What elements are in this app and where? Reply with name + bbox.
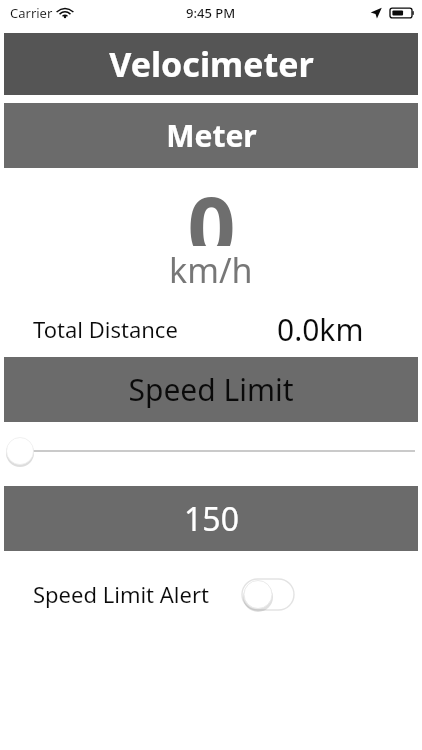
- button[interactable]: Meter: [4, 103, 418, 168]
- staticText: Velocimeter: [109, 41, 314, 87]
- staticText: Carrier: [10, 4, 53, 22]
- button[interactable]: 150: [4, 486, 418, 551]
- staticText: Speed Limit: [128, 369, 294, 410]
- staticText: Meter: [166, 115, 257, 156]
- button[interactable]: Velocimeter: [4, 33, 418, 95]
- button[interactable]: Speed limit slider: [0, 422, 422, 480]
- staticText: Total Distance: [33, 314, 178, 344]
- button[interactable]: Speed Limit Alert toggle: [242, 579, 294, 610]
- staticText: 150: [184, 497, 239, 541]
- button[interactable]: Speed Limit: [4, 357, 418, 422]
- staticText: km/h: [169, 247, 253, 293]
- staticText: 9:45 PM: [186, 4, 236, 22]
- staticText: Speed Limit Alert: [33, 579, 209, 609]
- staticText: 0.0km: [277, 309, 364, 350]
- staticText: 0: [187, 168, 236, 246]
